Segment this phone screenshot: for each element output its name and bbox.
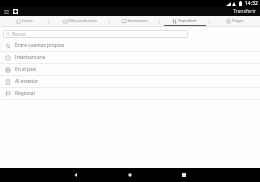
button[interactable]: Buscar	[3, 30, 188, 38]
staticText: Buscar	[12, 31, 27, 37]
button[interactable]: Pagar	[210, 16, 260, 26]
button[interactable]: Interbancaria	[0, 52, 260, 63]
staticText: Mis productos	[69, 18, 97, 24]
button[interactable]: Al exterior	[0, 76, 260, 87]
staticText: Interbancaria	[15, 54, 46, 61]
staticText: Asesoram.	[128, 18, 149, 24]
staticText: Regional	[15, 90, 35, 97]
staticText: Inicio	[22, 18, 33, 24]
button[interactable]: App logo	[12, 8, 19, 15]
button[interactable]: Asesoram.	[110, 16, 160, 26]
staticText: Al exterior	[15, 78, 39, 85]
staticText: Transferir	[178, 18, 198, 24]
button[interactable]: Transferir	[160, 16, 210, 26]
button[interactable]: Back	[49, 168, 103, 182]
button[interactable]: En el país	[0, 64, 260, 75]
button[interactable]: Home	[103, 168, 157, 182]
staticText: 14:32	[245, 0, 258, 7]
button[interactable]: Entre cuentas propias	[0, 40, 260, 51]
staticText: Transferir	[233, 8, 256, 15]
button[interactable]: Regional	[0, 88, 260, 99]
staticText: Pagar	[232, 18, 244, 24]
button[interactable]: Recent apps	[157, 168, 211, 182]
button[interactable]: Mis productos	[49, 16, 110, 26]
staticText: En el país	[15, 66, 37, 73]
button[interactable]: Inicio	[0, 16, 49, 26]
button[interactable]: Open navigation menu	[3, 8, 10, 15]
staticText: Entre cuentas propias	[15, 42, 65, 49]
